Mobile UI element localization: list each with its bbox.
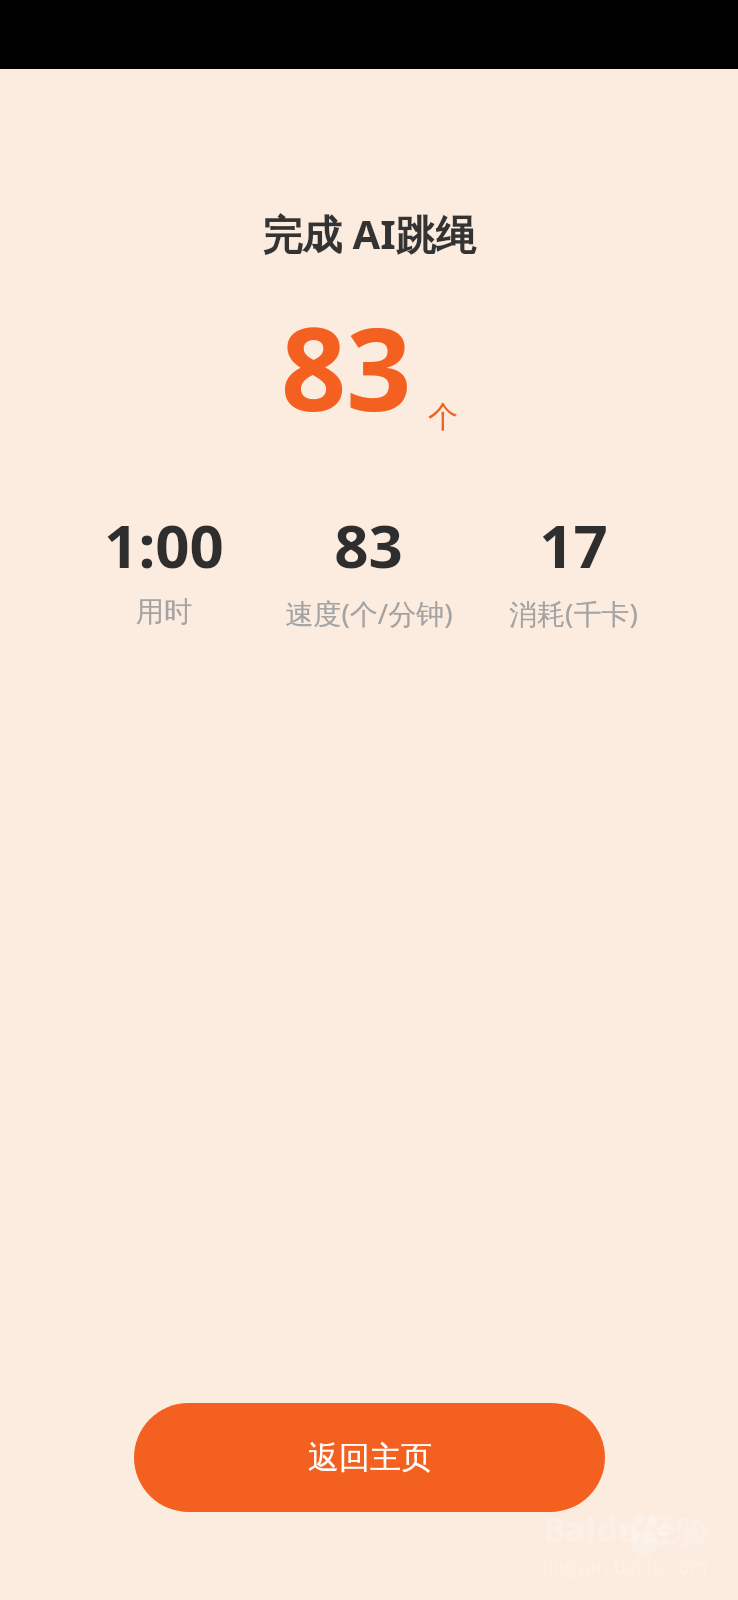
staticText: 个: [428, 398, 458, 436]
button[interactable]: 返回主页: [134, 1403, 605, 1512]
staticText: 返回主页: [308, 1438, 432, 1477]
staticText: 经验: [644, 1512, 708, 1552]
staticText: 速度(个/分钟): [285, 594, 453, 632]
staticText: 83: [281, 289, 412, 444]
staticText: Baidu: [543, 1506, 640, 1552]
staticText: 83: [334, 504, 403, 586]
staticText: 17: [539, 504, 608, 586]
other: Baidu watermark: [530, 1500, 720, 1586]
staticText: 消耗(千卡): [509, 594, 638, 632]
staticText: 完成 AI跳绳: [262, 206, 476, 261]
staticText: 1:00: [104, 504, 224, 586]
staticText: 用时: [136, 594, 192, 629]
